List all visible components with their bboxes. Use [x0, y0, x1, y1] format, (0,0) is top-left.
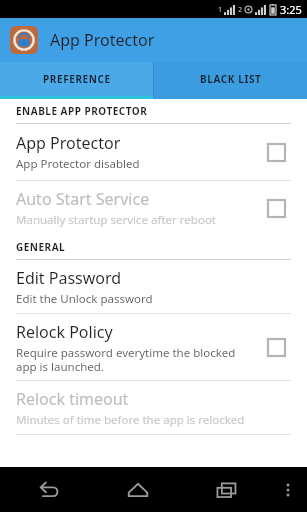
button[interactable]: Recent apps — [183, 467, 273, 512]
button[interactable]: Relock timeout — [0, 381, 307, 434]
staticText: Auto Start Service — [16, 188, 150, 210]
button[interactable]: Home — [93, 467, 183, 512]
staticText: App Protector — [16, 132, 121, 154]
button[interactable]: Toggle App Protector — [259, 135, 293, 169]
button[interactable]: Auto Start Service — [0, 181, 307, 235]
button[interactable]: Edit Password — [0, 260, 307, 313]
button[interactable]: App Protector — [0, 124, 307, 180]
staticText: 1 — [218, 5, 223, 15]
staticText: Relock Policy — [16, 321, 113, 343]
staticText: BLACK LIST — [200, 72, 262, 86]
staticText: Require password everytime the blocked a… — [16, 345, 236, 374]
button[interactable]: PREFERENCE — [0, 62, 153, 96]
staticText: 2 — [238, 5, 243, 15]
staticText: Manually startup service after reboot — [16, 212, 216, 228]
button[interactable]: Toggle Relock Policy — [259, 330, 293, 364]
button[interactable]: More options — [273, 467, 303, 512]
staticText: Edit the Unlock password — [16, 291, 153, 307]
staticText: ENABLE APP PROTECTOR — [16, 104, 148, 118]
button[interactable]: BLACK LIST — [154, 62, 307, 96]
button[interactable]: Toggle Auto Start Service — [259, 191, 293, 225]
staticText: PREFERENCE — [43, 72, 111, 86]
staticText: 3:25 — [280, 2, 302, 17]
staticText: Minutes of time before the app is relock… — [16, 412, 245, 428]
staticText: Relock timeout — [16, 388, 129, 410]
staticText: App Protector disabled — [16, 156, 140, 172]
staticText: Edit Password — [16, 267, 122, 289]
button[interactable]: Back — [4, 467, 93, 512]
button[interactable]: Relock Policy — [0, 314, 307, 380]
staticText: GENERAL — [16, 240, 66, 254]
staticText: App Protector — [50, 29, 155, 51]
